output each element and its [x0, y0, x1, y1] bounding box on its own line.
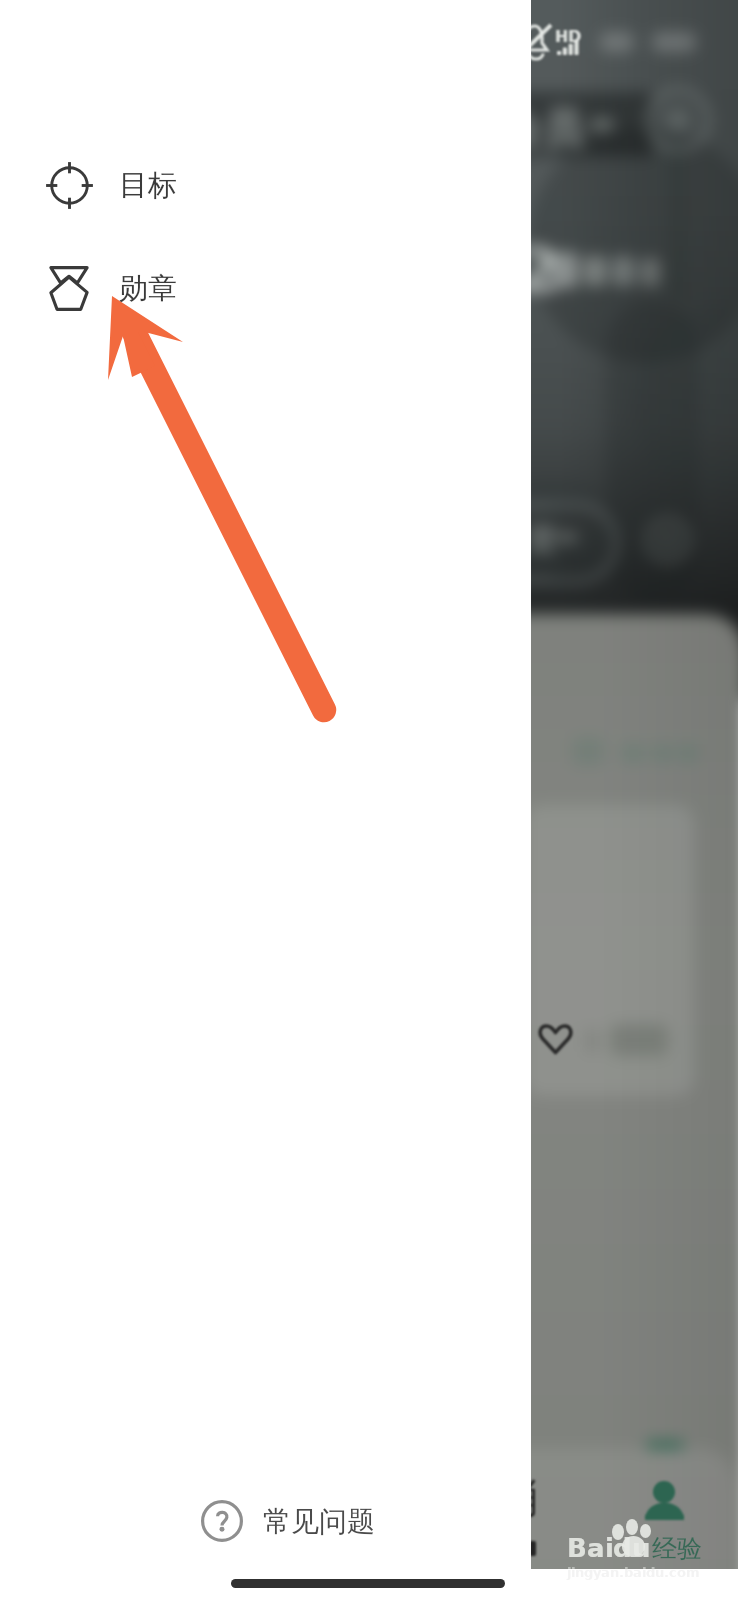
staticText: 常见问题 [263, 1504, 375, 1539]
other: 勋章 [49, 266, 89, 311]
button[interactable]: 常见问题 [201, 1493, 375, 1549]
button[interactable]: 勋章 [0, 248, 531, 328]
staticText: 勋章 [119, 270, 177, 307]
other: 目标 [46, 162, 93, 209]
staticText: 目标 [119, 167, 177, 204]
button[interactable]: 目标 [0, 145, 531, 225]
